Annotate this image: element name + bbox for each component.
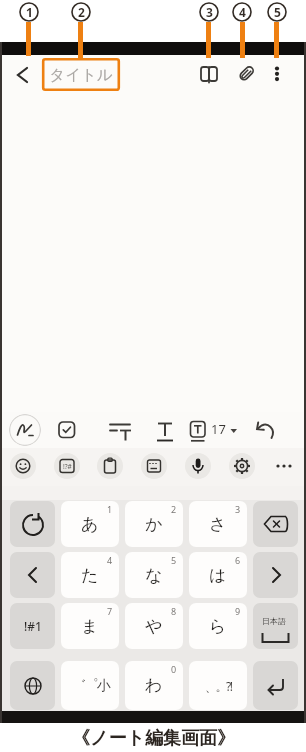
button[interactable]: [188, 420, 208, 444]
staticText: 4: [239, 4, 246, 20]
button[interactable]: 、。?!: [189, 661, 247, 710]
button[interactable]: か: [125, 501, 183, 547]
staticText: 5: [171, 554, 177, 566]
staticText: 8: [171, 605, 177, 617]
button[interactable]: や: [125, 603, 183, 649]
staticText: 日本語: [262, 616, 286, 626]
button[interactable]: [253, 501, 298, 547]
button[interactable]: [58, 421, 76, 439]
button[interactable]: [8, 61, 36, 89]
staticText: さ: [209, 514, 227, 535]
button[interactable]: [229, 453, 255, 479]
button[interactable]: [197, 63, 221, 85]
button[interactable]: ら: [189, 603, 247, 649]
staticText: 7: [107, 605, 113, 617]
button[interactable]: [267, 62, 287, 86]
button[interactable]: !#1: [10, 603, 55, 649]
button[interactable]: た: [61, 552, 119, 598]
staticText: 3: [235, 503, 241, 515]
staticText: ゛゜小: [72, 677, 109, 695]
staticText: 4: [107, 554, 113, 566]
staticText: か: [145, 514, 163, 535]
button[interactable]: [141, 453, 167, 479]
staticText: 1: [26, 4, 33, 20]
button[interactable]: [10, 552, 55, 598]
staticText: !#1: [24, 618, 42, 634]
staticText: た: [81, 565, 99, 586]
staticText: 2: [171, 503, 177, 515]
button[interactable]: ゛゜小: [61, 661, 119, 710]
staticText: あ: [81, 514, 99, 535]
staticText: 3: [206, 4, 213, 20]
staticText: 《ノート編集画面》: [72, 727, 235, 750]
button[interactable]: 日本語: [253, 603, 298, 649]
button[interactable]: 17: [207, 419, 241, 443]
button[interactable]: [271, 453, 297, 479]
button[interactable]: [108, 420, 134, 442]
button[interactable]: [155, 420, 175, 444]
staticText: ら: [209, 616, 227, 637]
button[interactable]: [54, 453, 80, 479]
staticText: タイトル: [49, 65, 113, 85]
staticText: は: [209, 565, 227, 586]
button[interactable]: [10, 453, 36, 479]
button[interactable]: [10, 501, 55, 547]
staticText: 1: [107, 503, 113, 515]
button[interactable]: [185, 453, 211, 479]
staticText: や: [145, 616, 163, 637]
button[interactable]: は: [189, 552, 247, 598]
staticText: !?#: [63, 462, 72, 471]
button[interactable]: ま: [61, 603, 119, 649]
staticText: 17: [211, 420, 226, 438]
button[interactable]: [234, 62, 258, 86]
staticText: 5: [274, 4, 281, 20]
button[interactable]: [253, 661, 298, 710]
staticText: 6: [235, 554, 241, 566]
staticText: わ: [145, 675, 163, 696]
button[interactable]: さ: [189, 501, 247, 547]
button[interactable]: [97, 453, 123, 479]
staticText: 0: [171, 663, 177, 675]
staticText: 、。?!: [205, 678, 232, 694]
staticText: ま: [81, 616, 99, 637]
button[interactable]: な: [125, 552, 183, 598]
button[interactable]: [253, 552, 298, 598]
button[interactable]: [10, 661, 55, 710]
button[interactable]: あ: [61, 501, 119, 547]
button[interactable]: わ: [125, 661, 183, 710]
button[interactable]: [9, 414, 41, 446]
staticText: 9: [235, 605, 241, 617]
staticText: 2: [78, 4, 85, 20]
staticText: な: [145, 565, 163, 586]
button[interactable]: タイトル: [44, 59, 118, 90]
button[interactable]: [252, 419, 278, 445]
